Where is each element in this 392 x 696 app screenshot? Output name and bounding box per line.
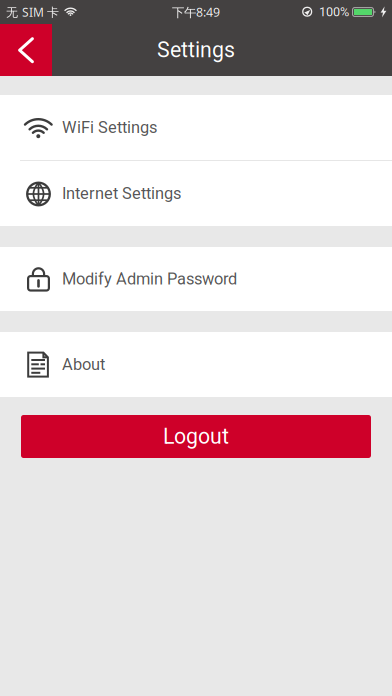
staticText: About [62, 355, 105, 374]
button[interactable]: Back [0, 24, 52, 76]
staticText: Logout [163, 424, 229, 449]
staticText: Modify Admin Password [62, 269, 237, 289]
button[interactable]: Logout [0, 415, 392, 458]
button[interactable]: Internet Settings [0, 161, 392, 226]
staticText: 无 SIM 卡 [6, 4, 59, 20]
button[interactable]: WiFi Settings [0, 95, 392, 160]
staticText: 下午8:49 [172, 4, 220, 20]
staticText: WiFi Settings [62, 118, 157, 137]
staticText: 100% [319, 5, 349, 19]
button[interactable]: About [0, 332, 392, 397]
staticText: Settings [157, 37, 235, 62]
button[interactable]: Modify Admin Password [0, 247, 392, 311]
staticText: Internet Settings [62, 184, 181, 203]
